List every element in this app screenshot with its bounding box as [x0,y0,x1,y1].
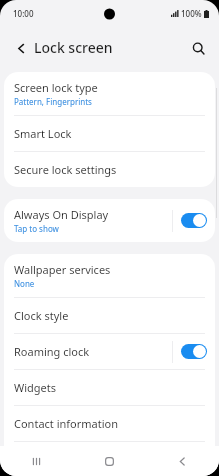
staticText: Tap to show [14,223,59,234]
staticText: Contact information [14,416,118,431]
staticText: Pattern, Fingerprints [14,96,92,107]
staticText: Smart Lock [14,126,72,141]
button[interactable]: Back [146,446,219,476]
staticText: Secure lock settings [14,162,117,177]
staticText: Wallpaper services [14,262,111,277]
staticText: Widgets [14,380,57,395]
staticText: None [14,278,35,289]
button[interactable]: Always On Display toggle [181,213,207,228]
staticText: 100% [181,8,202,19]
staticText: Roaming clock [14,344,90,359]
staticText: 10:00 [13,8,34,19]
staticText: Lock screen [34,38,113,57]
button[interactable]: Notifications [4,442,215,476]
button[interactable]: Notifications toggle [181,452,207,467]
button[interactable]: Recents [0,446,73,476]
button[interactable]: Roaming clock toggle [181,344,207,359]
button[interactable]: Contact information [4,406,215,441]
button[interactable]: Home [73,446,146,476]
button[interactable]: Smart Lock [4,116,215,151]
button[interactable]: Back [8,35,34,61]
staticText: Notifications [14,452,80,467]
button[interactable]: Secure lock settings [4,152,215,187]
button[interactable]: Roaming clock [4,334,215,369]
button[interactable]: Widgets [4,370,215,405]
staticText: Always On Display [14,207,109,222]
staticText: Clock style [14,308,69,323]
button[interactable]: Wallpaper services [4,254,215,297]
button[interactable]: Clock style [4,298,215,333]
button[interactable]: Search [185,35,211,61]
button[interactable]: Always On Display [4,199,215,242]
staticText: Screen lock type [14,80,98,95]
button[interactable]: Screen lock type [4,72,215,115]
